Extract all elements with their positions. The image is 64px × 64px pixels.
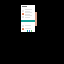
button[interactable] <box>21 15 35 18</box>
button[interactable] <box>21 24 35 27</box>
button[interactable] <box>21 27 35 30</box>
button[interactable] <box>21 12 35 15</box>
button[interactable] <box>21 9 35 12</box>
button[interactable] <box>21 5 35 8</box>
